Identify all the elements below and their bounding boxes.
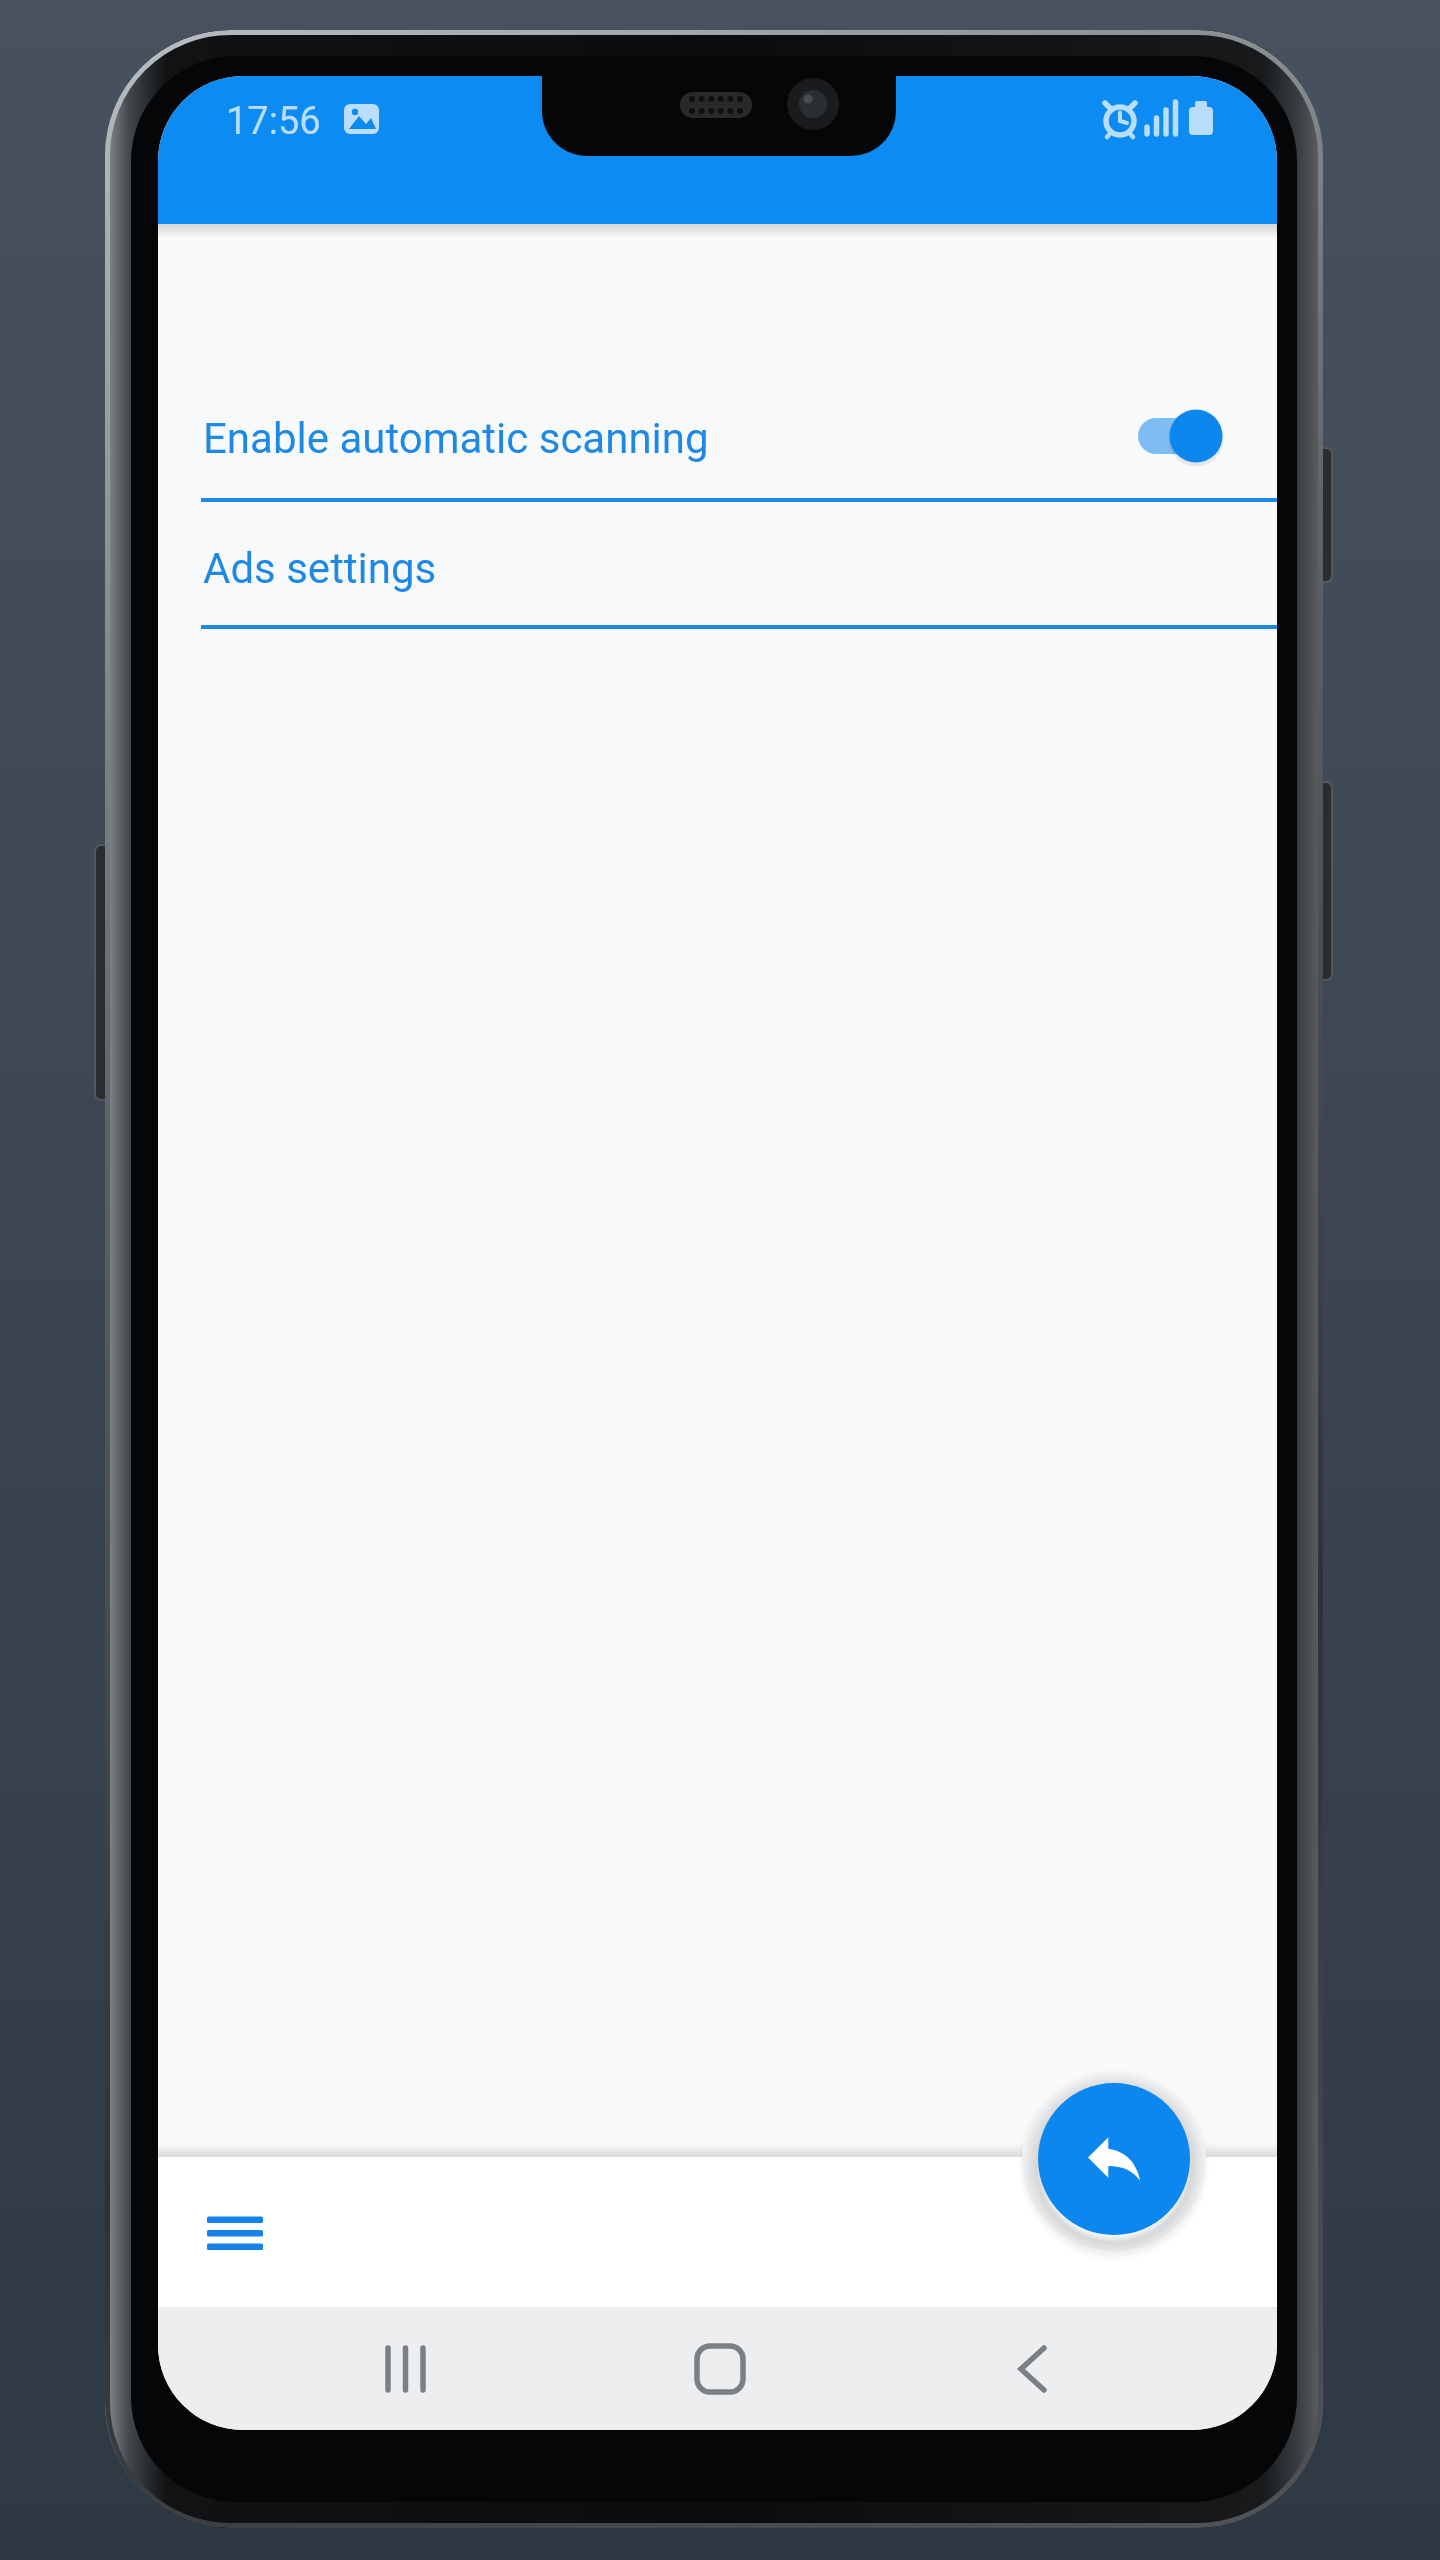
button[interactable] — [1038, 2083, 1190, 2235]
button[interactable]: Enable automatic scanning — [158, 368, 1277, 509]
staticText: Ads settings — [203, 544, 437, 593]
button[interactable] — [345, 2319, 465, 2419]
button[interactable] — [1133, 401, 1225, 471]
button[interactable]: Ads settings — [158, 508, 1277, 629]
staticText: 17:56 — [226, 99, 321, 144]
button[interactable] — [178, 2188, 290, 2276]
staticText: Enable automatic scanning — [203, 414, 709, 463]
button[interactable] — [660, 2319, 780, 2419]
button[interactable] — [972, 2319, 1092, 2419]
